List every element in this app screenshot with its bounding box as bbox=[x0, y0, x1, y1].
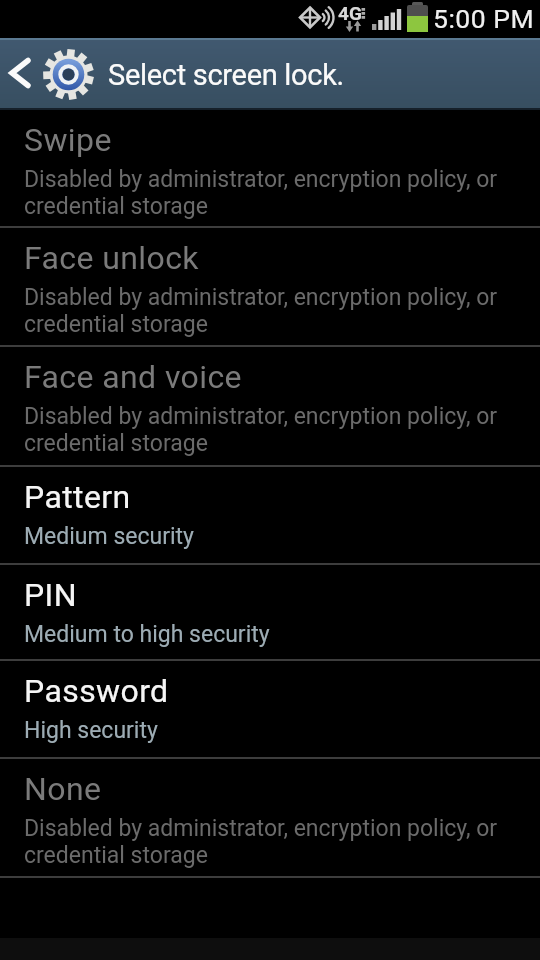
staticText: 5:00 PM bbox=[433, 3, 535, 34]
staticText: Disabled by administrator, encryption po… bbox=[24, 815, 498, 868]
staticText: Swipe bbox=[24, 121, 112, 159]
staticText: Disabled by administrator, encryption po… bbox=[24, 403, 498, 456]
button[interactable]: Password bbox=[0, 661, 540, 757]
staticText: None bbox=[24, 770, 102, 808]
button[interactable]: None bbox=[0, 759, 540, 876]
staticText: Disabled by administrator, encryption po… bbox=[24, 284, 498, 337]
button[interactable]: Swipe bbox=[0, 110, 540, 226]
staticText: 4G bbox=[338, 2, 362, 24]
staticText: Pattern bbox=[24, 478, 131, 516]
staticText: Medium security bbox=[24, 523, 194, 550]
button[interactable]: Face and voice bbox=[0, 347, 540, 465]
staticText: Password bbox=[24, 672, 169, 710]
staticText: High security bbox=[24, 717, 158, 744]
staticText: Medium to high security bbox=[24, 621, 270, 648]
staticText: Disabled by administrator, encryption po… bbox=[24, 166, 498, 219]
button[interactable]: Pattern bbox=[0, 467, 540, 563]
button[interactable]: PIN bbox=[0, 565, 540, 659]
staticText: Face and voice bbox=[24, 358, 242, 396]
staticText: Select screen lock. bbox=[108, 58, 344, 92]
button[interactable]: Face unlock bbox=[0, 228, 540, 345]
button[interactable]: Select screen lock. bbox=[0, 38, 540, 110]
staticText: Face unlock bbox=[24, 239, 199, 277]
staticText: PIN bbox=[24, 576, 77, 614]
